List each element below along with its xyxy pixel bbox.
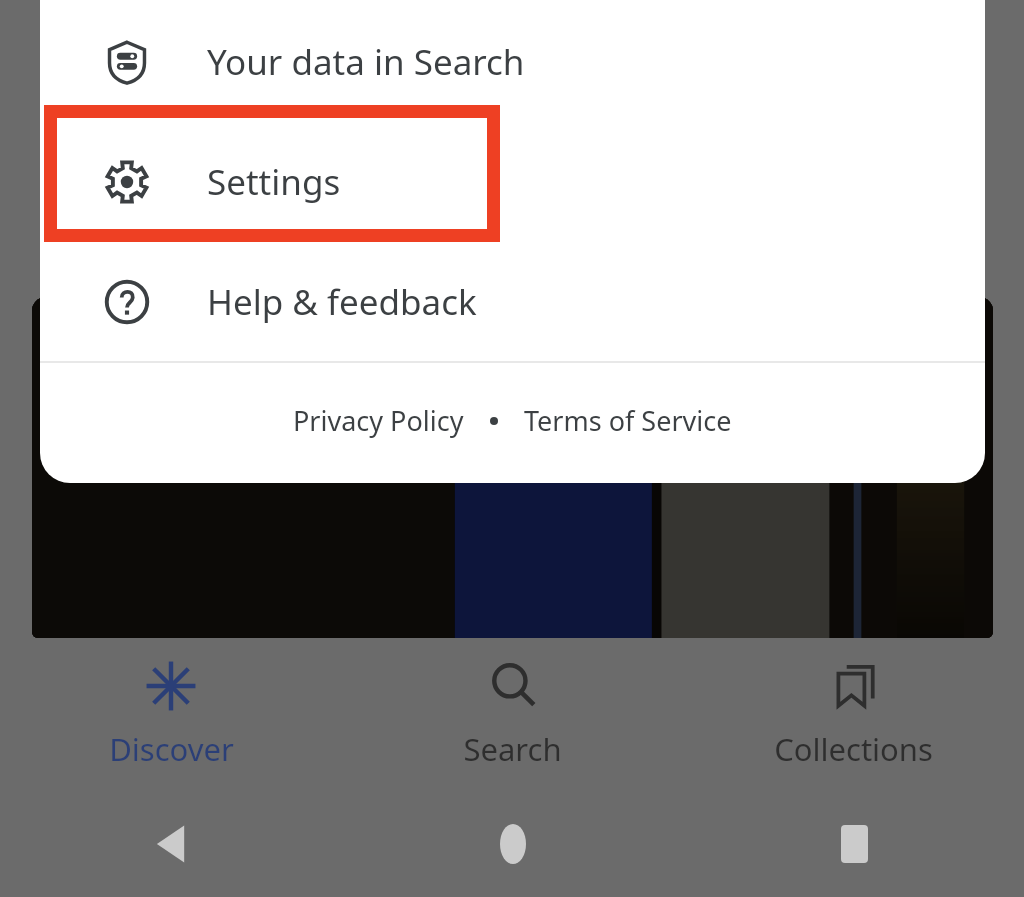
button[interactable]: Search (342, 640, 683, 790)
staticText: Terms of Service (524, 402, 732, 439)
button[interactable]: Settings (40, 134, 985, 230)
button[interactable]: Recent apps (811, 801, 897, 887)
button[interactable]: Discover (0, 640, 342, 790)
staticText: Discover (109, 728, 234, 770)
button[interactable]: Collections (683, 640, 1024, 790)
staticText: Search (463, 728, 562, 770)
staticText: Settings (207, 158, 341, 206)
staticText: Help & feedback (207, 278, 477, 326)
staticText: Collections (774, 728, 933, 770)
button[interactable]: Your data in Search (40, 14, 985, 110)
button[interactable]: Back (128, 801, 214, 887)
staticText: Privacy Policy (293, 402, 464, 439)
button[interactable]: Terms of Service (518, 394, 738, 447)
staticText: Your data in Search (207, 38, 525, 86)
button[interactable]: Help & feedback (40, 254, 985, 350)
button[interactable]: Home (470, 801, 556, 887)
button[interactable]: Privacy Policy (287, 394, 470, 447)
